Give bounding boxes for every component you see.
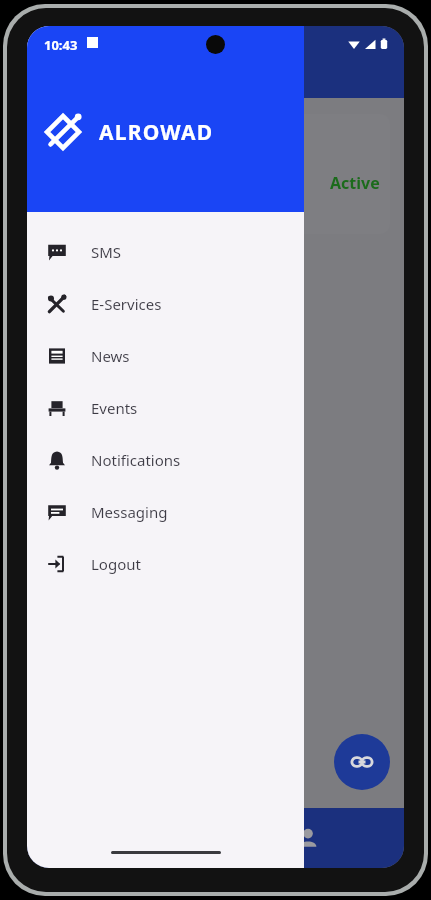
staticText: SMS <box>91 242 122 262</box>
staticText: News <box>91 346 130 366</box>
staticText: ad <box>43 122 61 142</box>
button[interactable]: Events <box>27 382 304 434</box>
button[interactable]: Notifications <box>27 434 304 486</box>
button[interactable]: E-Services <box>27 278 304 330</box>
button[interactable]: Messages <box>31 808 215 868</box>
staticText: Active <box>330 172 380 194</box>
staticText: 10:43 <box>44 36 78 54</box>
button[interactable]: Link <box>334 734 390 790</box>
button[interactable]: Messaging <box>27 486 304 538</box>
button[interactable]: Profile <box>215 808 400 868</box>
button[interactable]: News <box>27 330 304 382</box>
staticText: E-Services <box>91 294 162 314</box>
staticText: Messaging <box>91 502 168 522</box>
button[interactable]: Logout <box>27 538 304 590</box>
staticText: Events <box>91 398 138 418</box>
staticText: ALROWAD <box>99 118 214 147</box>
staticText: Notifications <box>91 450 181 470</box>
staticText: Logout <box>91 554 141 574</box>
button[interactable]: SMS <box>27 226 304 278</box>
